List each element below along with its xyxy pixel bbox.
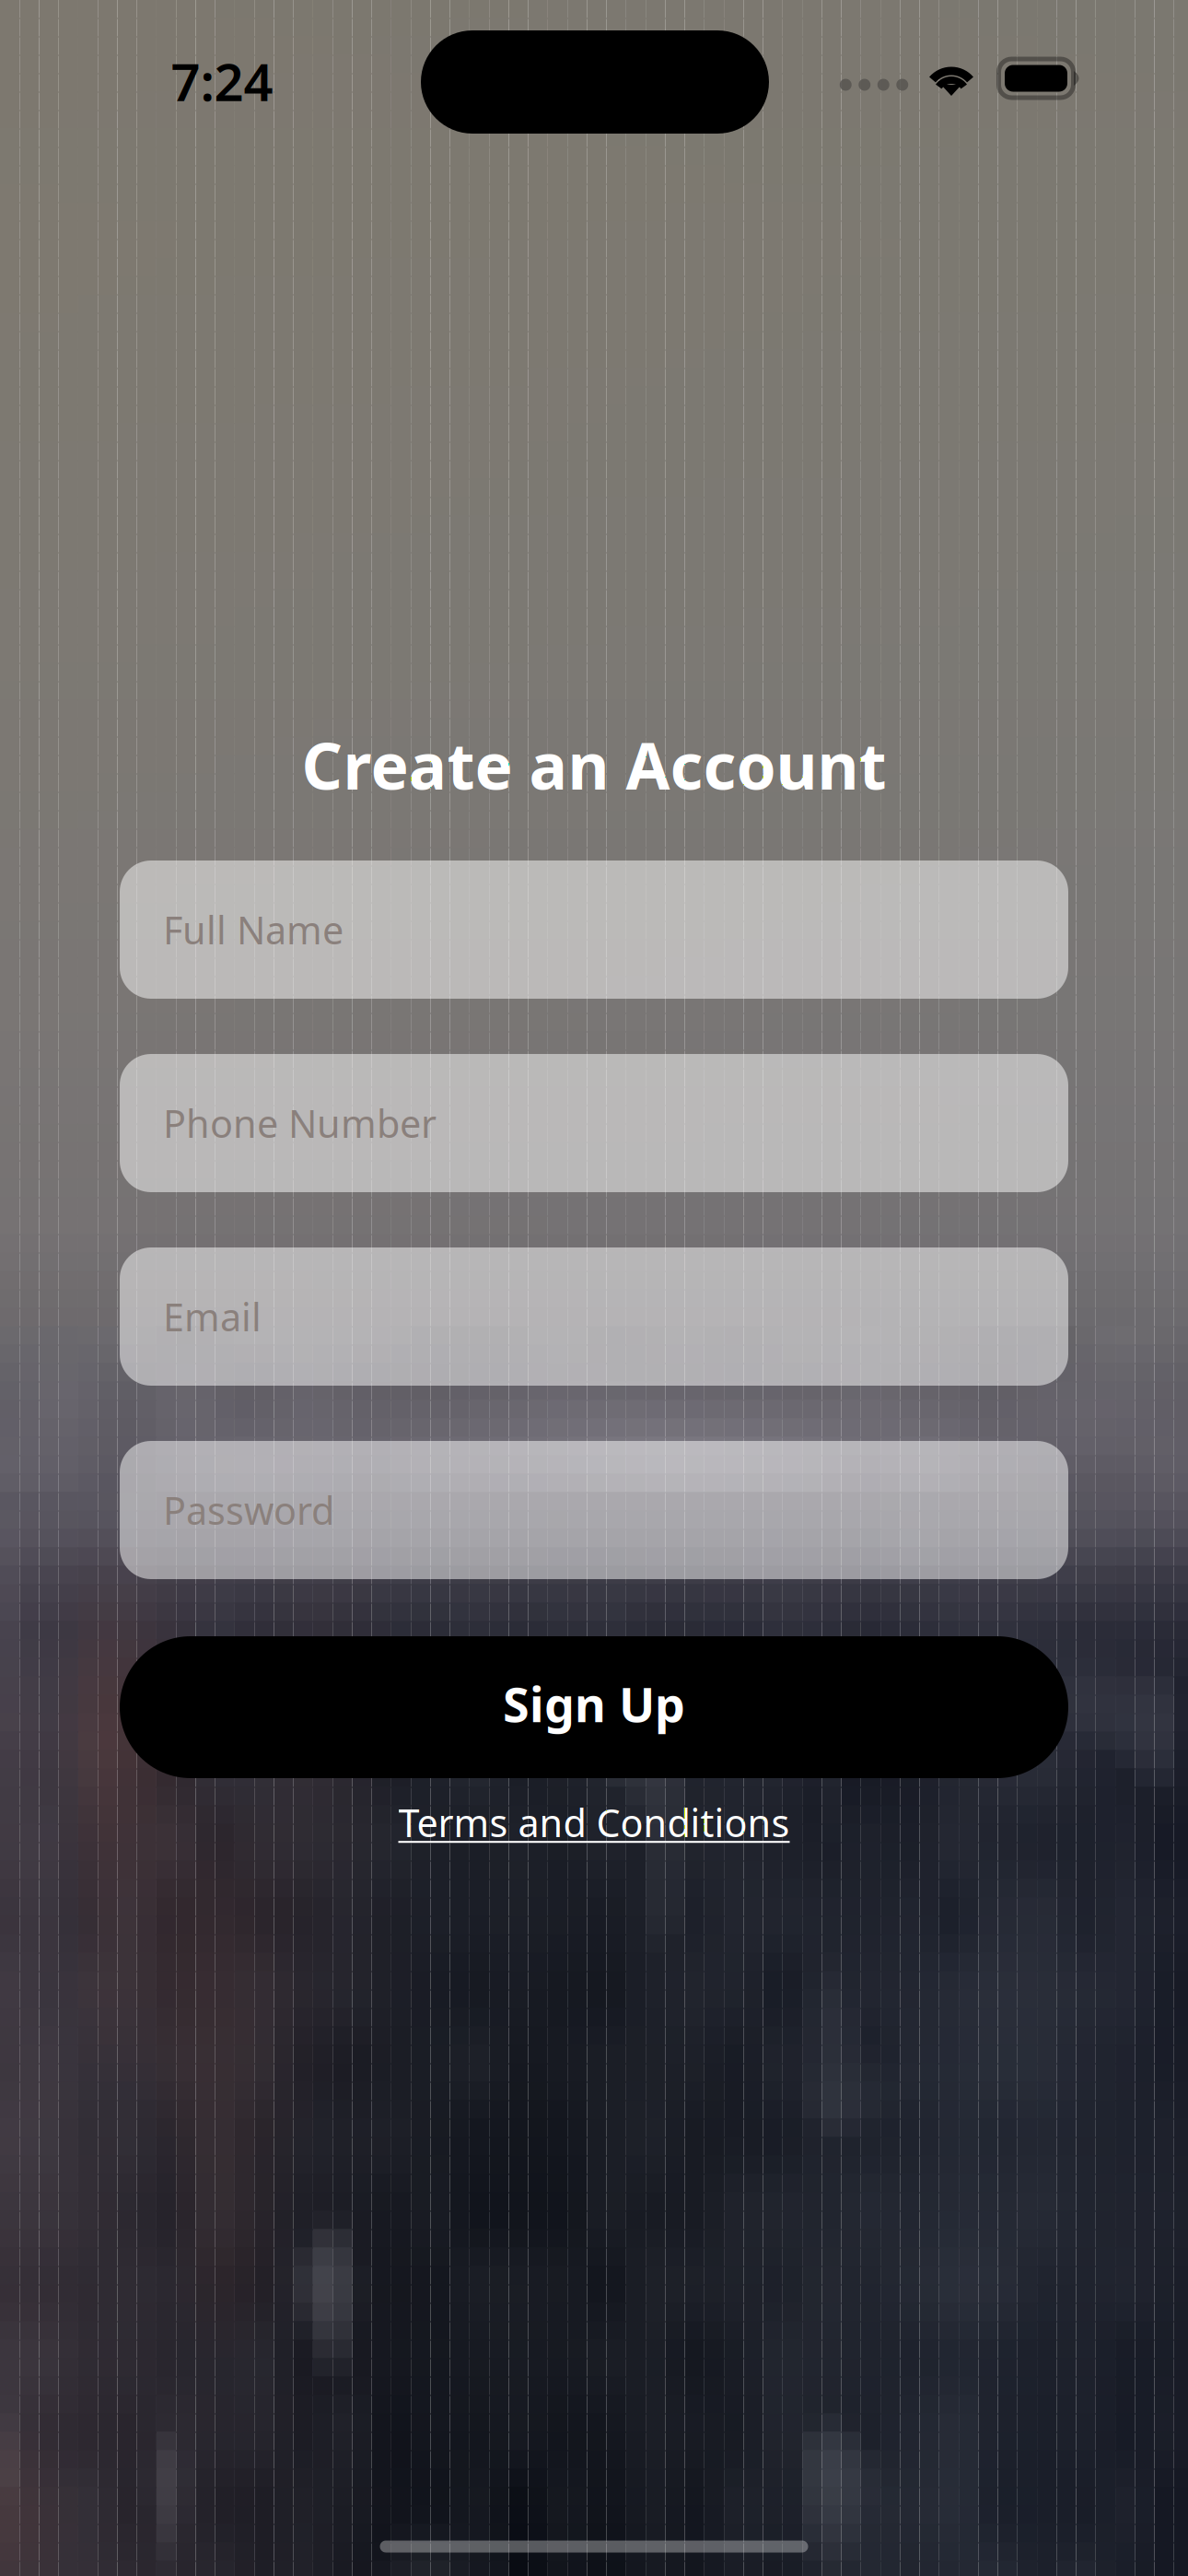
staticText: 7:24	[171, 47, 273, 115]
button[interactable]: Full Name	[120, 861, 1068, 999]
button[interactable]: Phone Number	[120, 1054, 1068, 1192]
staticText: Terms and Conditions	[398, 1797, 790, 1848]
staticText: Phone Number	[163, 1098, 437, 1148]
staticText: Full Name	[163, 904, 344, 955]
staticText: Email	[163, 1291, 262, 1342]
staticText: Password	[163, 1485, 334, 1535]
button[interactable]: Email	[120, 1247, 1068, 1386]
button[interactable]: Sign Up	[120, 1636, 1068, 1778]
button[interactable]: Terms and Conditions	[336, 1793, 852, 1852]
button[interactable]: Password	[120, 1441, 1068, 1579]
staticText: Sign Up	[503, 1672, 685, 1735]
staticText: Create an Account	[302, 722, 886, 807]
